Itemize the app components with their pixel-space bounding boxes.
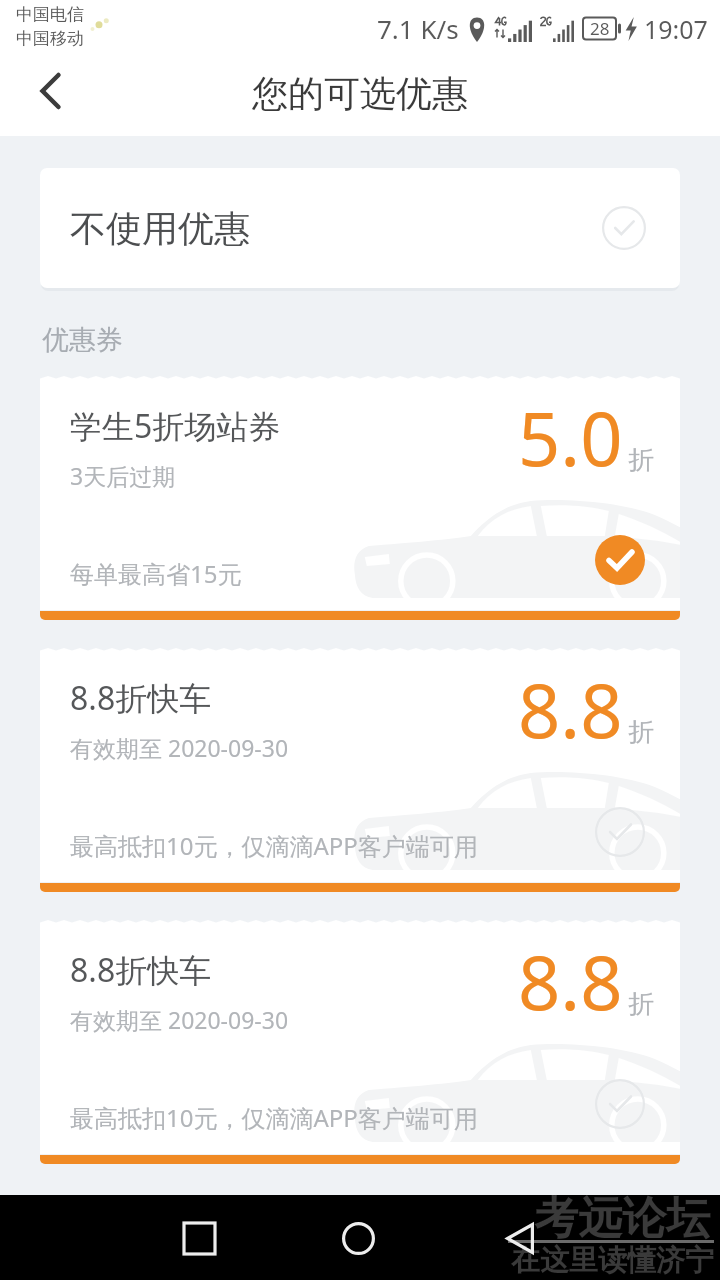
staticText: 不使用优惠 [70,206,250,251]
staticText: 8.8折快车 [70,676,212,720]
staticText: 中国电信 [16,4,84,25]
button[interactable]: Home [323,1203,393,1273]
staticText: 在这里读懂济宁 [511,1242,714,1279]
button[interactable]: Back [485,1203,555,1273]
staticText: 7.1 K/s [377,11,459,46]
staticText: 折 [628,444,654,477]
button[interactable]: 不使用优惠 [40,168,680,288]
staticText: 折 [628,716,654,749]
staticText: 最高抵扣10元，仅滴滴APP客户端可用 [70,829,478,862]
button[interactable]: 8.8折快车 [40,648,680,892]
staticText: 最高抵扣10元，仅滴滴APP客户端可用 [70,1101,478,1134]
button[interactable]: Recents [164,1203,234,1273]
staticText: 28 [590,17,610,40]
staticText: 中国移动 [16,28,84,49]
staticText: 8.8 [518,931,623,1032]
staticText: 考远论坛 [534,1191,710,1246]
button[interactable]: 8.8折快车 [40,920,680,1164]
staticText: 有效期至 2020-09-30 [70,732,289,763]
button[interactable]: Back [19,60,81,122]
staticText: 有效期至 2020-09-30 [70,1004,289,1035]
staticText: 3天后过期 [70,460,176,491]
staticText: 5.0 [518,387,623,488]
button[interactable]: 学生5折场站券 [40,376,680,620]
staticText: 8.8折快车 [70,948,212,992]
staticText: 每单最高省15元 [70,557,242,590]
staticText: 折 [628,988,654,1021]
staticText: 19:07 [644,12,708,46]
staticText: 您的可选优惠 [252,71,468,116]
staticText: 优惠券 [42,323,123,357]
staticText: 学生5折场站券 [70,404,281,448]
staticText: 8.8 [518,659,623,760]
